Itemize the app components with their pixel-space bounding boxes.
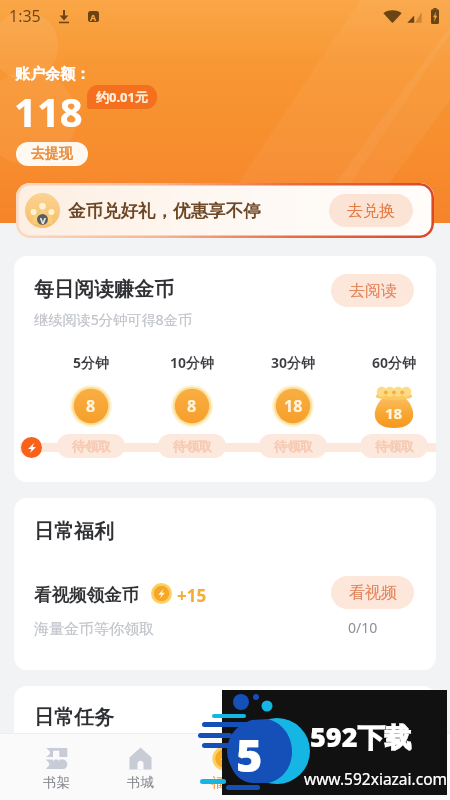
staticText: 去阅读 [349,281,397,301]
button[interactable]: V [16,183,434,238]
button[interactable]: 福利 [182,734,266,800]
staticText: 我的 [379,774,406,791]
staticText: 592下载 [310,718,412,755]
staticText: 30分钟 [271,353,316,372]
staticText: 10分钟 [170,353,215,372]
staticText: V [40,214,46,226]
staticText: 继续阅读5分钟可得8金币 [34,310,193,329]
staticText: 待领取 [375,438,414,454]
staticText: 5分钟 [73,353,110,372]
button[interactable]: 待领取 [158,434,226,458]
staticText: 账户余额： [15,65,90,84]
button[interactable]: 待领取 [360,434,428,458]
staticText: 每日阅读赚金币 [34,277,174,302]
staticText: 福利 [211,774,238,791]
staticText: 8 [86,395,96,417]
button[interactable]: 看视频 [331,576,414,609]
staticText: 书城 [127,774,154,791]
staticText: 看视频 [349,583,397,603]
staticText: 118 [14,84,83,138]
staticText: 5 [236,724,263,785]
staticText: +15 [177,584,207,607]
button[interactable]: 待领取 [259,434,327,458]
staticText: 日常任务 [34,705,114,730]
staticText: 1:35 [9,5,41,27]
staticText: 60分钟 [372,353,417,372]
button[interactable]: 待领取 [57,434,125,458]
staticText: 8 [187,395,197,417]
button[interactable]: 去兑换 [329,194,413,227]
staticText: 看视频领金币 [34,584,139,606]
staticText: 海量金币等你领取 [34,620,154,639]
button[interactable]: 去提现 [16,142,88,166]
button[interactable]: 书城 [98,734,182,800]
button[interactable]: 我的 [350,734,434,800]
button[interactable]: 书架 [14,734,98,800]
staticText: 听书 [295,774,322,791]
staticText: 去兑换 [347,201,395,221]
staticText: 待领取 [173,438,212,454]
staticText: 约0.01元 [96,88,148,106]
staticText: 日常福利 [34,519,114,544]
staticText: 待领取 [274,438,313,454]
staticText: 18 [385,403,403,423]
staticText: 18 [284,395,303,417]
button[interactable]: 听书 [266,734,350,800]
staticText: A [90,11,97,22]
staticText: 0/10 [348,618,378,637]
staticText: www.592xiazai.com [304,768,448,789]
staticText: 金币兑好礼，优惠享不停 [68,200,261,222]
staticText: 待领取 [72,438,111,454]
button[interactable]: 去阅读 [331,274,414,307]
staticText: 书架 [43,774,70,791]
staticText: 去提现 [31,145,73,163]
